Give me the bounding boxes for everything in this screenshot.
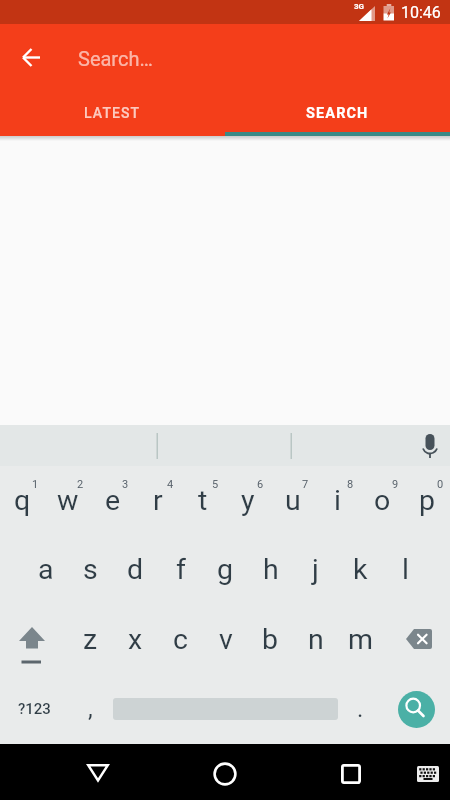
staticText: 8 <box>347 478 354 491</box>
button[interactable] <box>74 749 122 797</box>
staticText: 1 <box>32 478 39 491</box>
staticText: k <box>353 553 368 586</box>
staticText: s <box>83 553 98 586</box>
staticText: 0 <box>437 478 444 491</box>
staticText: t <box>198 484 208 517</box>
staticText: r <box>153 484 163 517</box>
staticText: q <box>14 484 31 517</box>
staticText: 9 <box>392 478 399 491</box>
button[interactable]: t <box>180 466 225 535</box>
button[interactable]: e <box>90 466 135 535</box>
staticText: o <box>374 484 391 517</box>
button[interactable]: y <box>225 466 270 535</box>
button[interactable]: s <box>68 535 113 604</box>
button[interactable]: , <box>68 674 113 744</box>
button[interactable]: . <box>338 674 383 744</box>
button[interactable]: h <box>248 535 293 604</box>
button[interactable]: c <box>158 604 203 674</box>
staticText: i <box>334 484 341 517</box>
staticText: d <box>127 553 144 586</box>
button[interactable]: i <box>315 466 360 535</box>
staticText: 6 <box>257 478 264 491</box>
staticText: ?123 <box>18 700 51 718</box>
button[interactable]: j <box>293 535 338 604</box>
staticText: 10:46 <box>401 3 441 22</box>
button[interactable]: o <box>360 466 405 535</box>
button[interactable]: b <box>248 604 293 674</box>
staticText: j <box>312 553 319 586</box>
staticText: , <box>88 695 93 723</box>
button[interactable]: z <box>68 604 113 674</box>
staticText: w <box>57 484 79 517</box>
staticText: 3G <box>354 2 365 11</box>
button[interactable]: q <box>0 466 45 535</box>
button[interactable]: SEARCH <box>225 90 450 136</box>
staticText: v <box>219 623 233 656</box>
button[interactable]: d <box>113 535 158 604</box>
staticText: x <box>128 623 143 656</box>
button[interactable] <box>7 33 55 81</box>
staticText: c <box>173 623 188 656</box>
staticText: m <box>348 623 373 656</box>
button[interactable]: g <box>203 535 248 604</box>
button[interactable]: LATEST <box>0 90 225 136</box>
button[interactable]: a <box>23 535 68 604</box>
button[interactable]: w <box>45 466 90 535</box>
button[interactable] <box>72 37 442 77</box>
button[interactable]: m <box>338 604 383 674</box>
button[interactable] <box>383 604 450 674</box>
button[interactable] <box>383 674 450 744</box>
button[interactable]: ?123 <box>0 674 68 744</box>
staticText: u <box>285 484 301 517</box>
button[interactable]: v <box>203 604 248 674</box>
button[interactable]: p <box>405 466 450 535</box>
staticText: n <box>308 623 324 656</box>
staticText: LATEST <box>84 105 141 121</box>
button[interactable]: k <box>338 535 383 604</box>
staticText: 5 <box>212 478 219 491</box>
button[interactable] <box>408 754 448 794</box>
button[interactable] <box>201 750 249 798</box>
button[interactable]: f <box>158 535 203 604</box>
staticText: e <box>105 484 121 517</box>
button[interactable] <box>0 604 68 674</box>
staticText: f <box>176 553 186 586</box>
button[interactable] <box>327 750 375 798</box>
button[interactable]: x <box>113 604 158 674</box>
staticText: z <box>83 623 98 656</box>
staticText: g <box>217 553 234 586</box>
staticText: 2 <box>77 478 84 491</box>
staticText: a <box>38 553 54 586</box>
staticText: p <box>419 484 436 517</box>
staticText: Search… <box>78 47 153 70</box>
staticText: b <box>262 623 279 656</box>
button[interactable]: n <box>293 604 338 674</box>
staticText: SEARCH <box>306 105 369 122</box>
button[interactable]: l <box>383 535 427 604</box>
staticText: 7 <box>302 478 309 491</box>
staticText: . <box>357 695 364 723</box>
button[interactable]: u <box>270 466 315 535</box>
staticText: h <box>263 553 279 586</box>
staticText: l <box>402 553 409 586</box>
button[interactable]: r <box>135 466 180 535</box>
staticText: 4 <box>167 478 174 491</box>
button[interactable] <box>409 425 450 466</box>
staticText: 3 <box>122 478 129 491</box>
staticText: y <box>241 484 255 517</box>
